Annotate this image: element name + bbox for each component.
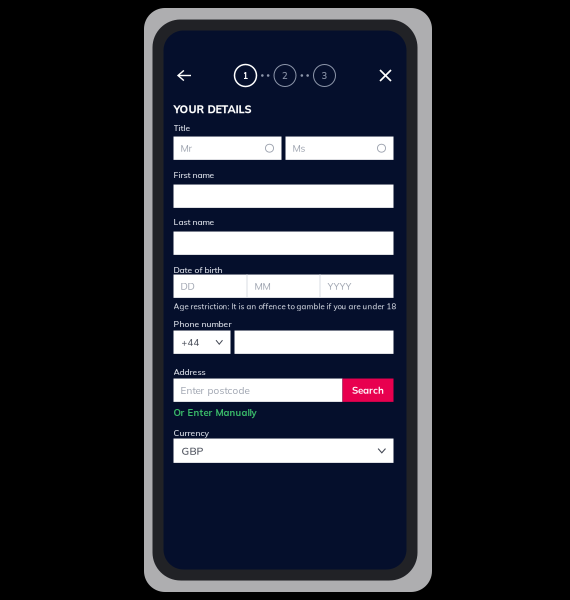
staticText: Age restriction: It is an offence to gam… — [173, 301, 396, 311]
button[interactable]: Currency — [173, 438, 393, 463]
staticText: Address — [173, 366, 205, 377]
staticText: YYYY — [327, 280, 351, 292]
staticText: Date of birth — [173, 264, 222, 275]
staticText: YOUR DETAILS — [173, 102, 251, 116]
button[interactable]: Mr — [173, 136, 281, 160]
staticText: Last name — [173, 216, 214, 227]
staticText: 2 — [282, 70, 288, 81]
staticText: Phone number — [173, 318, 231, 329]
staticText: Search — [352, 384, 384, 396]
button[interactable]: Country code — [173, 330, 230, 354]
button[interactable]: Ms — [285, 136, 393, 160]
staticText: Mr — [180, 142, 192, 154]
button[interactable]: Back — [170, 61, 198, 89]
staticText: MM — [254, 280, 270, 292]
button[interactable]: Close — [371, 61, 399, 89]
button[interactable]: Search — [342, 378, 393, 402]
staticText: GBP — [181, 444, 203, 457]
button[interactable]: Or Enter Manually — [173, 406, 256, 418]
staticText: First name — [173, 169, 214, 180]
staticText: Currency — [173, 427, 209, 438]
staticText: Title — [173, 122, 190, 133]
staticText: Enter postcode — [180, 384, 249, 396]
staticText: +44 — [181, 336, 199, 348]
staticText: Or Enter Manually — [173, 406, 256, 418]
staticText: Ms — [292, 142, 305, 154]
staticText: 1 — [242, 70, 248, 81]
staticText: 3 — [321, 70, 327, 81]
staticText: DD — [180, 280, 194, 292]
